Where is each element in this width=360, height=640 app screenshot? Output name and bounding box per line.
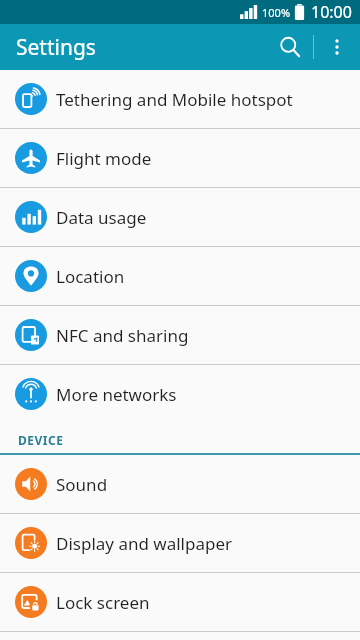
button[interactable]: Display and wallpaper bbox=[0, 514, 360, 572]
staticText: More networks bbox=[56, 383, 177, 406]
button[interactable]: Search bbox=[267, 24, 313, 70]
button[interactable]: Sound bbox=[0, 455, 360, 513]
staticText: 10:00 bbox=[311, 1, 352, 23]
button[interactable]: Location bbox=[0, 247, 360, 305]
button[interactable]: NFC and sharing bbox=[0, 306, 360, 364]
staticText: Data usage bbox=[56, 206, 147, 229]
button[interactable]: More options bbox=[314, 24, 360, 70]
staticText: Location bbox=[56, 265, 125, 288]
staticText: 100% bbox=[262, 5, 291, 20]
staticText: Lock screen bbox=[56, 591, 150, 614]
button[interactable]: More networks bbox=[0, 365, 360, 423]
staticText: Settings bbox=[16, 33, 96, 62]
staticText: Flight mode bbox=[56, 147, 152, 170]
button[interactable]: Flight mode bbox=[0, 129, 360, 187]
staticText: Display and wallpaper bbox=[56, 532, 233, 555]
button[interactable]: Tethering and Mobile hotspot bbox=[0, 70, 360, 128]
button[interactable]: Data usage bbox=[0, 188, 360, 246]
staticText: Sound bbox=[56, 473, 108, 496]
staticText: DEVICE bbox=[18, 432, 64, 448]
staticText: Tethering and Mobile hotspot bbox=[56, 88, 293, 111]
staticText: NFC and sharing bbox=[56, 324, 189, 347]
button[interactable]: Lock screen bbox=[0, 573, 360, 631]
